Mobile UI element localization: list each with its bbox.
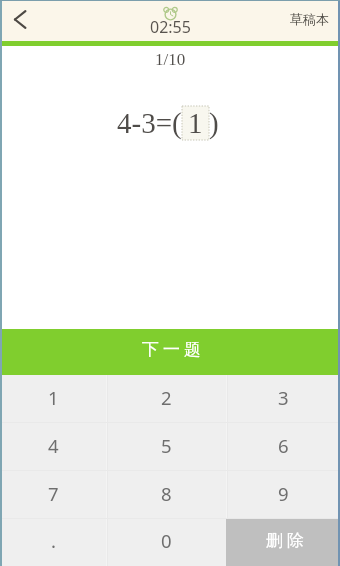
button[interactable]: 下一题 — [0, 329, 340, 375]
button[interactable]: 8 — [106, 471, 226, 518]
staticText: 草稿本 — [290, 11, 329, 27]
button[interactable]: 删除 — [226, 519, 340, 566]
staticText: ) — [209, 107, 219, 139]
button[interactable]: 1 — [0, 375, 106, 422]
button[interactable]: Back — [0, 0, 40, 39]
staticText: 1 — [188, 107, 203, 139]
staticText: 下一题 — [140, 339, 203, 360]
button[interactable]: . — [0, 519, 106, 566]
staticText: 02:55 — [150, 16, 191, 38]
staticText: 4-3=( — [117, 107, 182, 139]
button[interactable]: 9 — [226, 471, 340, 518]
staticText: 删除 — [264, 530, 306, 551]
button[interactable]: 6 — [226, 423, 340, 470]
button[interactable]: 2 — [106, 375, 226, 422]
staticText: 1/10 — [155, 50, 186, 69]
staticText: 8 — [161, 481, 172, 506]
staticText: 6 — [278, 433, 289, 458]
staticText: 1 — [48, 385, 59, 410]
staticText: 9 — [278, 481, 289, 506]
button[interactable]: 5 — [106, 423, 226, 470]
button[interactable]: 3 — [226, 375, 340, 422]
staticText: . — [51, 528, 56, 553]
staticText: 2 — [161, 385, 172, 410]
button[interactable]: 7 — [0, 471, 106, 518]
staticText: 5 — [161, 433, 172, 458]
button[interactable]: 4 — [0, 423, 106, 470]
button[interactable]: 0 — [106, 519, 226, 566]
staticText: 7 — [48, 481, 59, 506]
staticText: 4 — [48, 433, 59, 458]
button[interactable]: 草稿本 — [290, 11, 329, 27]
staticText: 3 — [278, 385, 289, 410]
staticText: 0 — [161, 528, 172, 553]
